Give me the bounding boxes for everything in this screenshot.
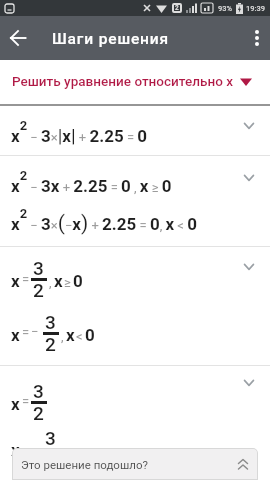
staticText: Решить уравнение относительно x <box>12 73 234 89</box>
button[interactable]: Решить уравнение относительно x <box>0 60 270 104</box>
staticText: 3 <box>33 380 44 402</box>
staticText: 2 <box>45 333 56 355</box>
button[interactable] <box>0 106 270 155</box>
staticText: Шаги решения <box>52 30 170 48</box>
staticText: x2 − 3x + 2.25 = 0 , x ≥ 0 <box>11 168 172 196</box>
staticText: x <box>11 271 20 291</box>
staticText: = <box>22 272 30 287</box>
staticText: 0 <box>73 271 83 291</box>
button[interactable] <box>0 366 270 480</box>
button[interactable]: Это решение подошло? <box>12 448 258 480</box>
staticText: 93% <box>218 4 233 13</box>
staticText: 2 <box>33 279 44 301</box>
staticText: < <box>76 329 83 344</box>
staticText: ≥ <box>64 275 71 290</box>
staticText: = <box>22 394 30 409</box>
staticText: 2 <box>175 4 179 12</box>
button[interactable] <box>244 24 270 52</box>
staticText: − <box>31 324 39 339</box>
staticText: 3 <box>33 257 44 279</box>
staticText: Это решение подошло? <box>21 458 148 471</box>
staticText: 0 <box>85 325 95 345</box>
staticText: x <box>11 440 20 460</box>
staticText: x <box>11 325 20 345</box>
staticText: x <box>54 271 63 291</box>
staticText: , <box>49 275 52 290</box>
staticText: 2 <box>33 402 44 424</box>
staticText: 19:39 <box>246 4 266 13</box>
staticText: x2 − 3×(−x) + 2.25 = 0, x < 0 <box>11 206 197 235</box>
staticText: , <box>61 329 64 344</box>
button[interactable] <box>4 24 32 52</box>
button[interactable] <box>0 247 270 365</box>
button[interactable] <box>0 156 270 246</box>
staticText: x <box>66 325 75 345</box>
staticText: 3 <box>45 427 56 449</box>
staticText: = <box>22 325 30 340</box>
staticText: 3 <box>45 311 56 333</box>
staticText: x2 − 3×|x| + 2.25 = 0 <box>11 118 147 146</box>
staticText: x <box>11 394 20 414</box>
